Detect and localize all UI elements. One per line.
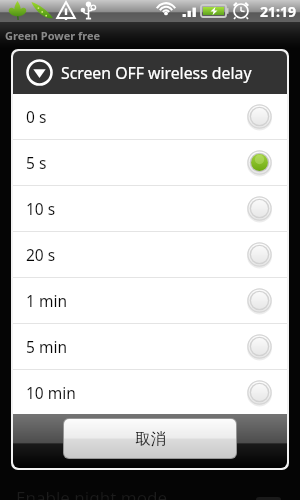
button[interactable]: 10 min — [13, 370, 287, 414]
staticText: Green Power free — [5, 28, 101, 43]
button[interactable]: 5 min — [13, 324, 287, 369]
staticText: 1 min — [26, 290, 247, 311]
staticText: Enable night mode — [16, 486, 167, 500]
staticText: 10 s — [26, 198, 247, 219]
staticText: 0 s — [26, 106, 247, 127]
button[interactable]: 取消 — [64, 419, 236, 458]
button[interactable]: 5 s — [13, 140, 287, 185]
button[interactable]: 1 min — [13, 278, 287, 323]
staticText: 5 s — [26, 152, 247, 173]
button[interactable]: 20 s — [13, 232, 287, 277]
other: Expand — [26, 59, 53, 86]
staticText: 10 min — [26, 382, 247, 403]
staticText: 取消 — [135, 429, 166, 449]
staticText: 20 s — [26, 244, 247, 265]
staticText: Screen OFF wireless delay — [61, 62, 252, 84]
staticText: 5 min — [26, 336, 247, 357]
staticText: 21:19 — [260, 2, 296, 21]
button[interactable]: 0 s — [13, 94, 287, 139]
button[interactable]: 10 s — [13, 186, 287, 231]
